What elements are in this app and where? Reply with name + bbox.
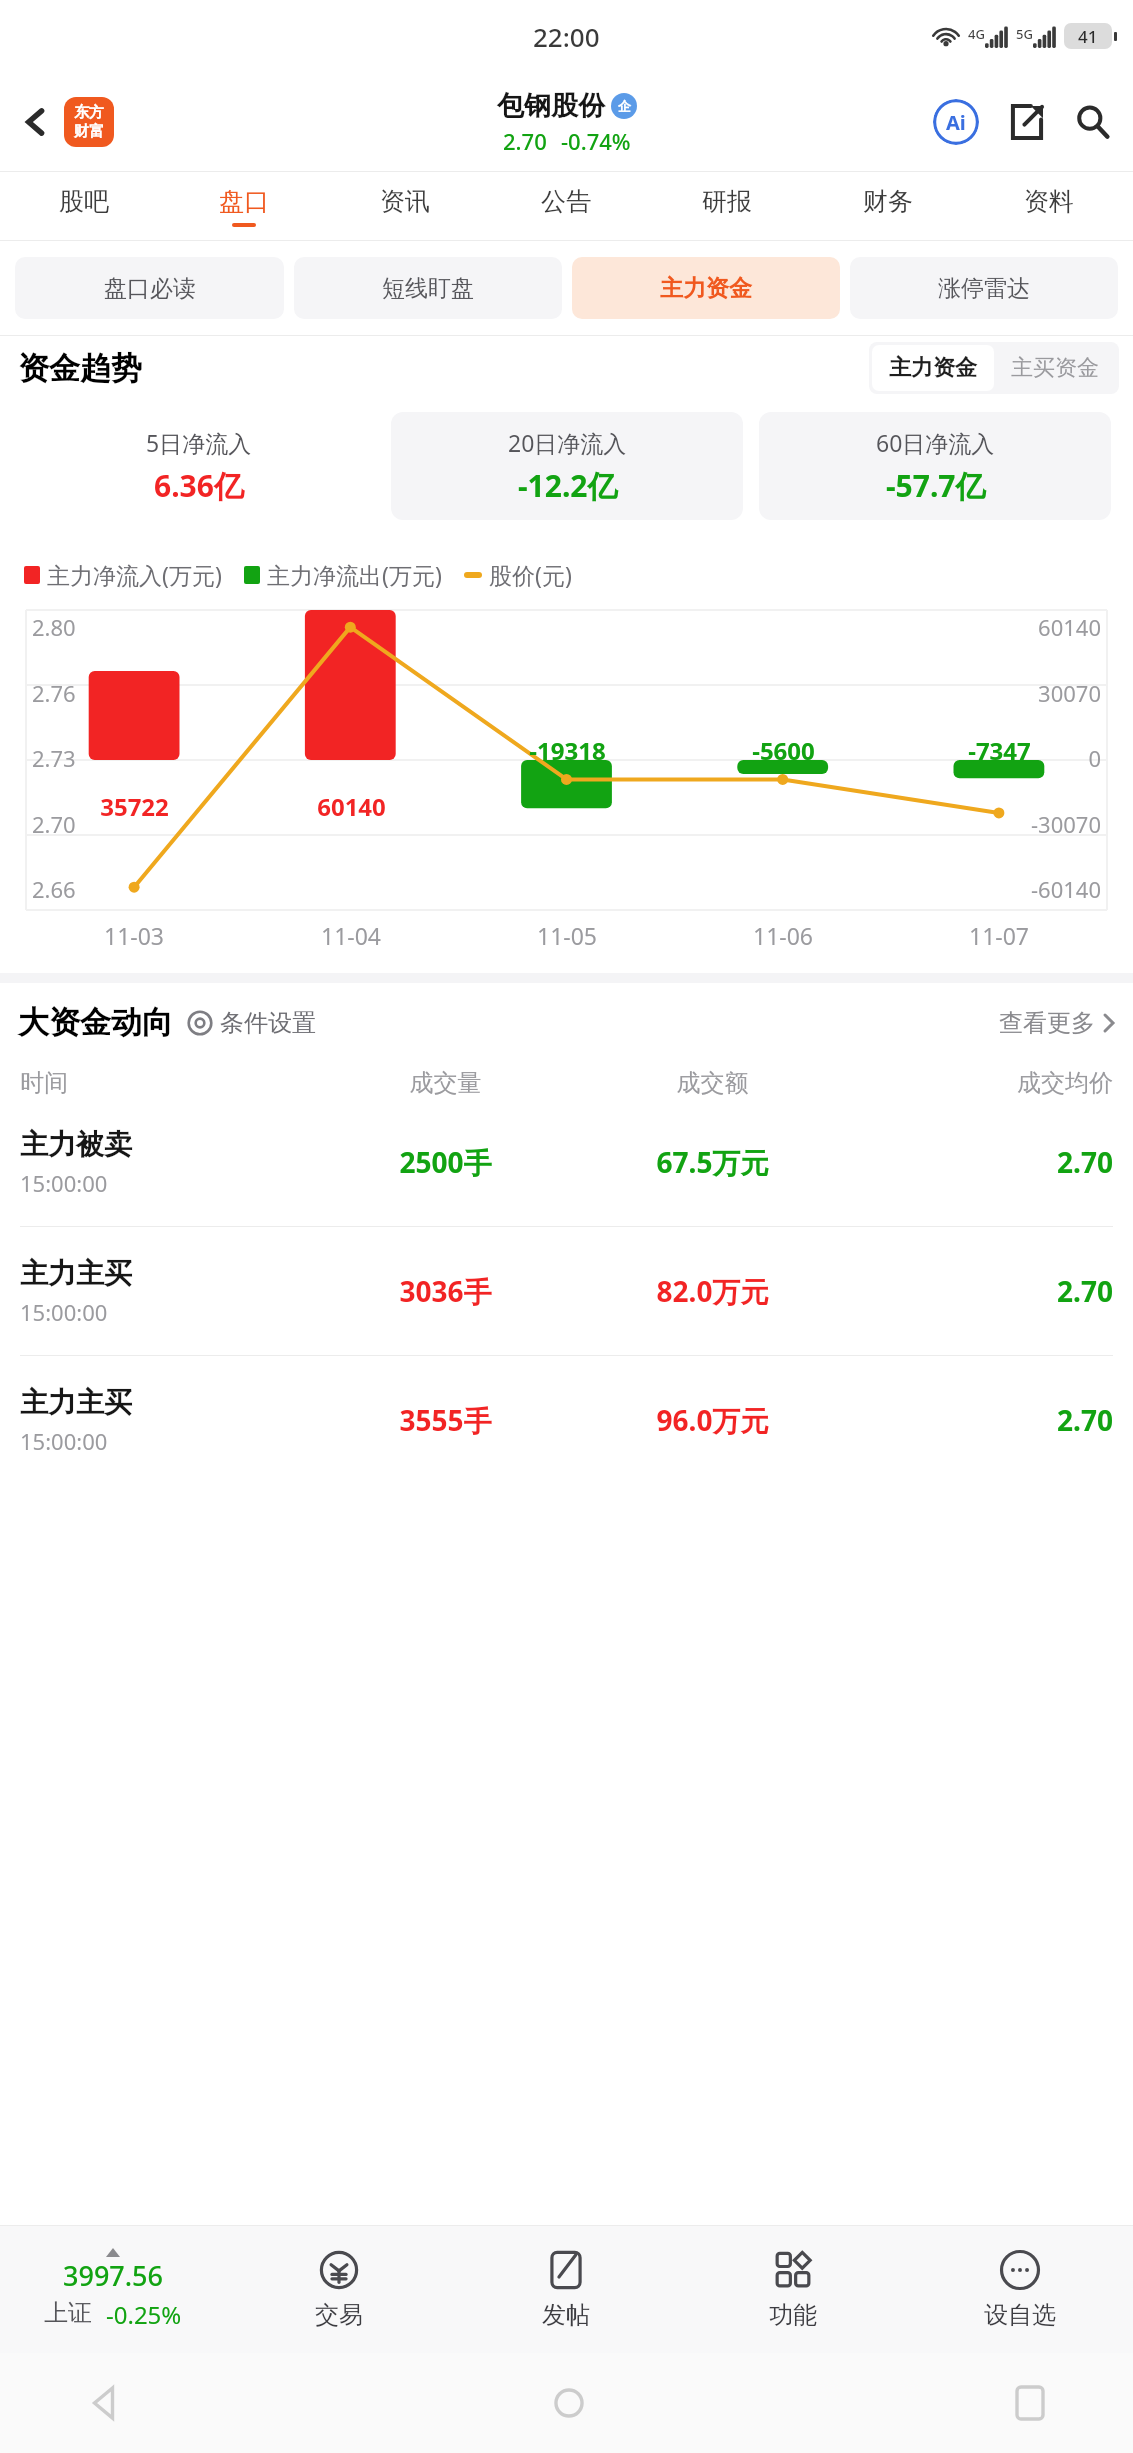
- staticText: 研报: [702, 186, 752, 217]
- staticText: 成交量: [312, 1068, 579, 1098]
- staticText: 2.70: [503, 126, 547, 156]
- staticText: 60140: [317, 790, 386, 823]
- staticText: 功能: [769, 2300, 817, 2330]
- staticText: 盘口: [219, 186, 269, 217]
- staticText: 3036手: [312, 1272, 579, 1310]
- staticText: -0.25%: [106, 2298, 182, 2331]
- button[interactable]: 资讯: [324, 172, 485, 240]
- staticText: -57.7亿: [886, 465, 986, 506]
- button[interactable]: 主力资金: [572, 257, 840, 319]
- staticText: 交易: [315, 2300, 363, 2330]
- button[interactable]: 东方财富: [64, 97, 114, 147]
- button[interactable]: 交易: [226, 2225, 452, 2353]
- staticText: 11-05: [537, 920, 598, 951]
- staticText: 短线盯盘: [382, 274, 474, 303]
- button[interactable]: 20日净流入: [391, 412, 743, 520]
- button[interactable]: Back: [8, 94, 64, 150]
- button[interactable]: 主力主买: [20, 1356, 1113, 1484]
- staticText: 2.70: [846, 1401, 1113, 1439]
- button[interactable]: 发帖: [452, 2225, 679, 2353]
- button[interactable]: 涨停雷达: [850, 257, 1118, 319]
- staticText: 6.36亿: [154, 465, 244, 506]
- staticText: -30070: [1030, 809, 1101, 839]
- button[interactable]: Search: [1065, 94, 1121, 150]
- staticText: 60日净流入: [876, 427, 995, 458]
- button[interactable]: 5日净流入: [22, 412, 375, 520]
- staticText: 2.70: [846, 1272, 1113, 1310]
- button[interactable]: 研报: [646, 172, 807, 240]
- staticText: 2500手: [312, 1143, 579, 1181]
- staticText: 股吧: [59, 186, 109, 217]
- button[interactable]: 主力资金: [889, 354, 977, 382]
- button[interactable]: 60日净流入: [759, 412, 1111, 520]
- button[interactable]: 主买资金: [1011, 354, 1099, 382]
- staticText: Ai: [946, 109, 966, 136]
- button[interactable]: 设自选: [906, 2225, 1133, 2353]
- staticText: 主买资金: [1011, 354, 1099, 382]
- button[interactable]: 财务: [807, 172, 968, 240]
- staticText: 公告: [541, 186, 591, 217]
- staticText: 30070: [1038, 678, 1101, 708]
- staticText: 条件设置: [220, 1008, 316, 1038]
- staticText: -19318: [529, 734, 606, 767]
- staticText: 主力主买: [20, 1256, 132, 1291]
- staticText: 主力资金: [889, 354, 977, 382]
- staticText: 包钢股份: [497, 89, 605, 123]
- staticText: 成交均价: [846, 1068, 1113, 1098]
- staticText: 35722: [100, 790, 169, 823]
- staticText: 2.70: [846, 1143, 1113, 1181]
- staticText: 2.76: [32, 678, 76, 708]
- button[interactable]: 查看更多: [999, 1008, 1117, 1038]
- staticText: 资金趋势: [18, 349, 142, 388]
- staticText: 60140: [1038, 612, 1101, 642]
- staticText: 资讯: [380, 186, 430, 217]
- staticText: 财富: [74, 122, 104, 141]
- staticText: 主力资金: [660, 274, 752, 303]
- button[interactable]: 条件设置: [187, 1008, 316, 1038]
- staticText: 11-06: [753, 920, 814, 951]
- staticText: 11-03: [104, 920, 165, 951]
- staticText: 11-07: [969, 920, 1030, 951]
- staticText: 设自选: [984, 2300, 1056, 2330]
- button[interactable]: 资料: [968, 172, 1129, 240]
- staticText: -60140: [1030, 874, 1101, 904]
- staticText: 资料: [1024, 186, 1074, 217]
- button[interactable]: 盘口必读: [15, 257, 284, 319]
- button[interactable]: 短线盯盘: [294, 257, 562, 319]
- staticText: 股价(元): [489, 559, 572, 590]
- staticText: -0.74%: [561, 126, 631, 156]
- staticText: 2.66: [32, 874, 76, 904]
- staticText: 11-04: [321, 920, 382, 951]
- button[interactable]: 功能: [679, 2225, 906, 2353]
- staticText: 财务: [863, 186, 913, 217]
- staticText: 0: [1088, 743, 1101, 773]
- staticText: 盘口必读: [104, 274, 196, 303]
- staticText: 20日净流入: [508, 427, 627, 458]
- staticText: 发帖: [542, 2300, 590, 2330]
- button[interactable]: 公告: [485, 172, 646, 240]
- staticText: 时间: [20, 1068, 312, 1098]
- staticText: 主力被卖: [20, 1127, 132, 1162]
- button[interactable]: 3997.56: [0, 2248, 226, 2331]
- staticText: 22:00: [533, 19, 600, 54]
- staticText: 15:00:00: [20, 1168, 108, 1198]
- button[interactable]: 主力主买: [20, 1227, 1113, 1355]
- staticText: 企: [618, 98, 631, 114]
- button[interactable]: AI: [927, 93, 985, 151]
- staticText: 15:00:00: [20, 1426, 108, 1456]
- staticText: 查看更多: [999, 1008, 1095, 1038]
- staticText: 41: [1078, 25, 1098, 48]
- button[interactable]: 股吧: [4, 172, 164, 240]
- staticText: 2.73: [32, 743, 76, 773]
- button[interactable]: 盘口: [164, 172, 324, 240]
- staticText: 主力净流入(万元): [47, 559, 222, 590]
- staticText: 82.0万元: [579, 1272, 846, 1310]
- staticText: 5日净流入: [146, 427, 252, 458]
- staticText: -7347: [968, 734, 1031, 767]
- button[interactable]: Share: [999, 94, 1055, 150]
- staticText: 15:00:00: [20, 1297, 108, 1327]
- staticText: 4G: [968, 25, 985, 43]
- staticText: 东方: [74, 103, 104, 122]
- button[interactable]: 主力被卖: [20, 1098, 1113, 1226]
- staticText: 3997.56: [63, 2257, 164, 2294]
